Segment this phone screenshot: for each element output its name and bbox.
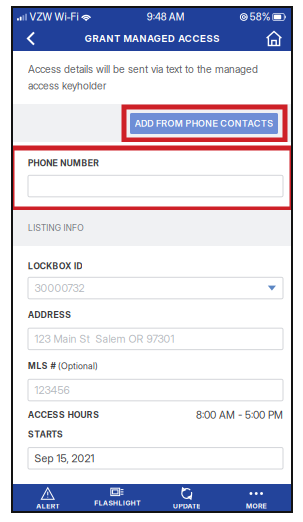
button[interactable]: ALERT: [13, 484, 82, 511]
staticText: PHONE NUMBER: [28, 158, 99, 168]
button[interactable]: Back: [13, 26, 49, 51]
staticText: ADD FROM PHONE CONTACTS: [135, 118, 273, 129]
button[interactable]: Home: [257, 26, 291, 51]
staticText: MORE: [246, 502, 266, 510]
staticText: Access details will be sent via text to …: [28, 63, 258, 92]
staticText: 9:48 AM: [147, 11, 185, 23]
staticText: ADDRESS: [28, 310, 71, 320]
staticText: STARTS: [28, 429, 63, 439]
staticText: GRANT MANAGED ACCESS: [85, 33, 219, 44]
staticText: (Optional): [58, 361, 98, 371]
staticText: 30000732: [34, 282, 84, 294]
button[interactable]: MORE: [221, 484, 291, 511]
staticText: FLASHLIGHT: [94, 499, 140, 507]
staticText: LISTING INFO: [28, 223, 83, 233]
staticText: 8:00 AM - 5:00 PM: [196, 409, 283, 421]
staticText: Sep 15, 2021: [34, 452, 94, 465]
staticText: UPDATE: [173, 502, 200, 510]
button[interactable]: FLASHLIGHT: [82, 484, 152, 511]
staticText: 123456: [34, 384, 69, 396]
button[interactable]: UPDATE: [152, 484, 221, 511]
staticText: 123 Main St Salem OR 97301: [34, 332, 174, 345]
staticText: ACCESS HOURS: [28, 410, 99, 420]
staticText: VZW Wi-Fi: [27, 11, 80, 23]
staticText: LOCKBOX ID: [28, 261, 82, 271]
staticText: MLS #: [28, 361, 55, 371]
button[interactable]: ADD FROM PHONE CONTACTS: [130, 113, 278, 134]
staticText: ALERT: [36, 502, 59, 510]
staticText: 58%: [248, 11, 273, 23]
